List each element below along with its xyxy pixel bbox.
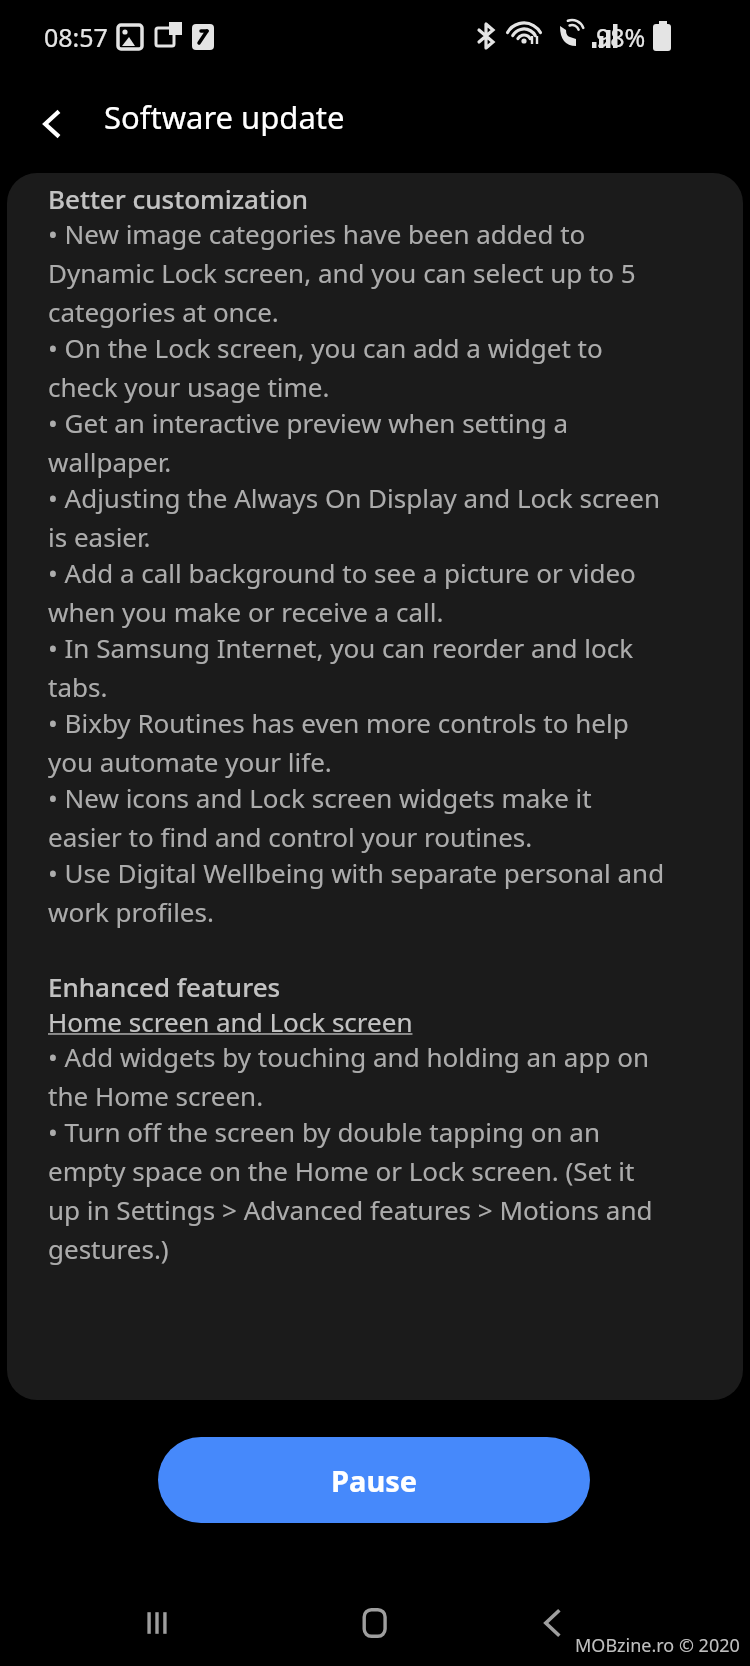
- button[interactable]: Back: [18, 90, 86, 158]
- staticText: • New image categories have been added t…: [48, 216, 668, 330]
- staticText: • Add a call background to see a picture…: [48, 555, 668, 630]
- staticText: Pause: [331, 1461, 418, 1500]
- staticText: 98%: [596, 20, 646, 54]
- staticText: • Get an interactive preview when settin…: [48, 405, 668, 480]
- staticText: Software update: [104, 96, 345, 138]
- staticText: 08:57: [44, 20, 108, 54]
- staticText: • On the Lock screen, you can add a widg…: [48, 330, 668, 405]
- button[interactable]: Back: [508, 1578, 598, 1666]
- staticText: • Use Digital Wellbeing with separate pe…: [48, 855, 668, 930]
- staticText: • Bixby Routines has even more controls …: [48, 705, 668, 780]
- staticText: • Add widgets by touching and holding an…: [48, 1039, 668, 1114]
- staticText: • In Samsung Internet, you can reorder a…: [48, 630, 668, 705]
- button[interactable]: Pause: [158, 1437, 590, 1523]
- staticText: Enhanced features: [48, 969, 281, 1004]
- staticText: MOBzine.ro © 2020: [575, 1633, 740, 1658]
- staticText: • Adjusting the Always On Display and Lo…: [48, 480, 668, 555]
- staticText: Home screen and Lock screen: [48, 1004, 413, 1039]
- staticText: • New icons and Lock screen widgets make…: [48, 780, 668, 855]
- staticText: • Turn off the screen by double tapping …: [48, 1114, 668, 1267]
- button[interactable]: Recent apps: [112, 1578, 202, 1666]
- button[interactable]: Home: [330, 1578, 420, 1666]
- staticText: Better customization: [48, 181, 309, 216]
